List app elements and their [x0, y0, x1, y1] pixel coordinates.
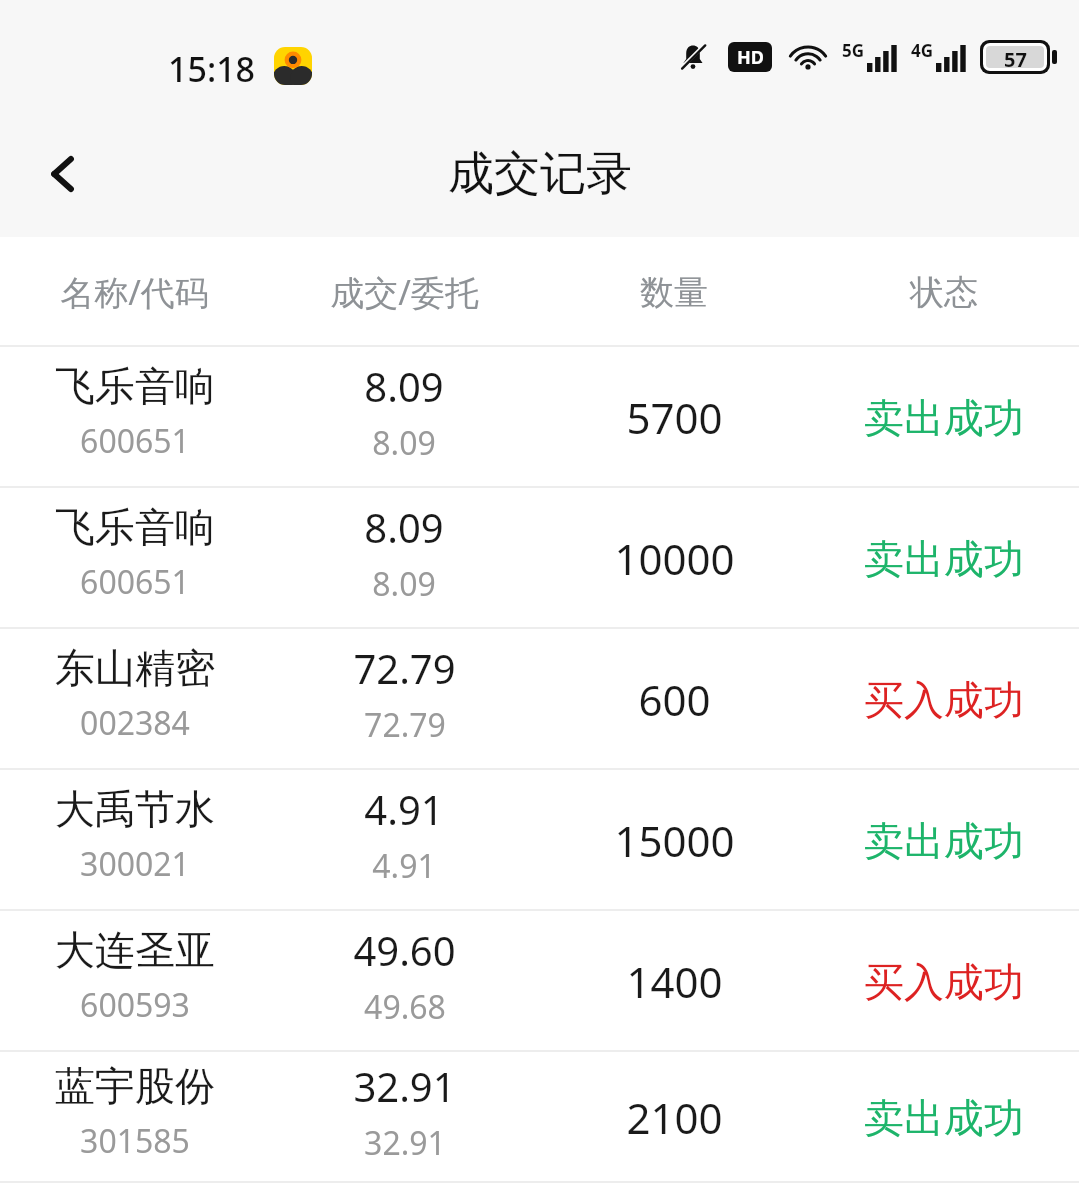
- staticText: 2100: [626, 1089, 723, 1146]
- button[interactable]: 飞乐音响: [0, 347, 1079, 488]
- staticText: 600651: [80, 560, 190, 604]
- staticText: 成交记录: [448, 145, 632, 203]
- staticText: 32.91: [353, 1059, 456, 1113]
- staticText: 卖出成功: [864, 534, 1024, 584]
- staticText: 15:18: [168, 46, 256, 92]
- staticText: 600651: [80, 419, 190, 463]
- staticText: 8.09: [364, 500, 444, 554]
- staticText: 32.91: [364, 1121, 446, 1165]
- button[interactable]: 大连圣亚: [0, 911, 1079, 1052]
- staticText: 成交/委托: [330, 269, 479, 315]
- button[interactable]: 东山精密: [0, 629, 1079, 770]
- staticText: 301585: [80, 1119, 190, 1163]
- staticText: 4.91: [372, 844, 436, 888]
- staticText: 600: [638, 671, 711, 728]
- staticText: 002384: [80, 701, 190, 745]
- staticText: 大连圣亚: [55, 925, 215, 975]
- staticText: 8.09: [372, 421, 436, 465]
- staticText: 4.91: [364, 782, 444, 836]
- staticText: 72.79: [364, 703, 446, 747]
- staticText: 15000: [614, 812, 735, 869]
- button[interactable]: Back: [20, 131, 106, 217]
- staticText: 状态: [910, 271, 978, 314]
- staticText: 8.09: [372, 562, 436, 606]
- staticText: 57: [1004, 46, 1027, 68]
- staticText: 600593: [80, 983, 190, 1027]
- staticText: 名称/代码: [60, 269, 209, 315]
- staticText: 4G: [911, 39, 934, 62]
- staticText: 1400: [626, 953, 723, 1010]
- staticText: 飞乐音响: [55, 502, 215, 552]
- staticText: 飞乐音响: [55, 361, 215, 411]
- staticText: 数量: [640, 271, 708, 314]
- staticText: 买入成功: [864, 957, 1024, 1007]
- staticText: 大禹节水: [55, 784, 215, 834]
- staticText: 49.60: [353, 923, 456, 977]
- staticText: 卖出成功: [864, 393, 1024, 443]
- staticText: 买入成功: [864, 675, 1024, 725]
- staticText: 蓝宇股份: [55, 1061, 215, 1111]
- staticText: 卖出成功: [864, 1093, 1024, 1143]
- staticText: 72.79: [353, 641, 456, 695]
- staticText: 300021: [80, 842, 190, 886]
- staticText: 49.68: [364, 985, 446, 1029]
- staticText: 东山精密: [55, 643, 215, 693]
- button[interactable]: 蓝宇股份: [0, 1052, 1079, 1183]
- staticText: 8.09: [364, 359, 444, 413]
- staticText: 10000: [614, 530, 735, 587]
- button[interactable]: 飞乐音响: [0, 488, 1079, 629]
- button[interactable]: 大禹节水: [0, 770, 1079, 911]
- staticText: 5700: [626, 389, 723, 446]
- staticText: 5G: [842, 39, 865, 62]
- staticText: HD: [737, 45, 764, 70]
- staticText: 卖出成功: [864, 816, 1024, 866]
